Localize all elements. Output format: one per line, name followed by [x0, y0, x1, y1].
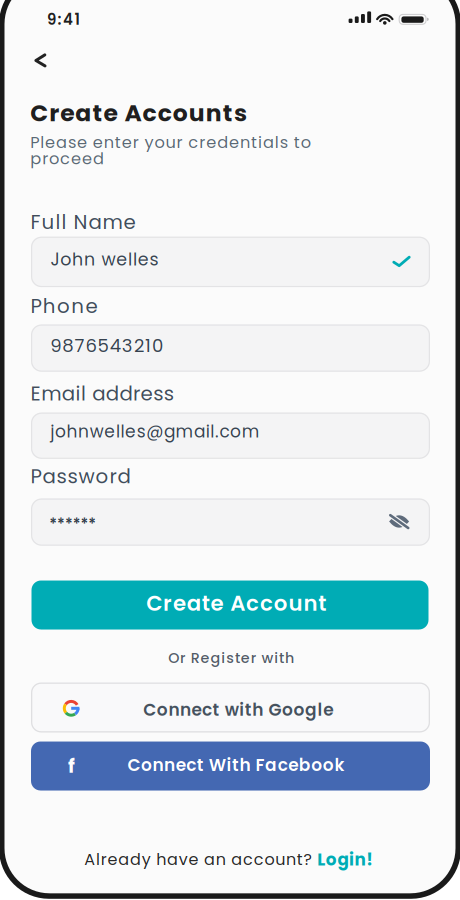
staticText: 9876543210: [50, 333, 169, 358]
staticText: Password: [31, 462, 137, 490]
staticText: Already have an account?: [84, 848, 316, 871]
staticText: Please enter your credentials to: [30, 131, 316, 154]
staticText: Or Register with: [168, 648, 299, 668]
staticText: Full Name: [31, 208, 142, 236]
button[interactable]: Show password: [385, 507, 413, 535]
button[interactable]: f: [31, 741, 430, 790]
staticText: John welles: [50, 247, 164, 272]
button[interactable]: Back: [19, 38, 63, 82]
staticText: Phone: [31, 292, 104, 320]
button[interactable]: Login!: [317, 848, 378, 871]
staticText: Create Account: [146, 588, 332, 618]
button[interactable]: Create Account: [31, 580, 428, 629]
staticText: Connect With Facebook: [127, 753, 349, 777]
staticText: Email address: [31, 380, 179, 407]
staticText: Connect with Google: [143, 698, 338, 722]
staticText: johnwelles@gmail.com: [50, 420, 265, 443]
staticText: Create Accounts: [30, 97, 253, 129]
staticText: ******: [49, 514, 100, 535]
staticText: proceed: [30, 147, 109, 170]
staticText: Login!: [317, 848, 378, 871]
staticText: f: [68, 753, 75, 779]
staticText: 9:41: [47, 9, 85, 30]
button[interactable]: Connect with Google: [31, 682, 430, 732]
